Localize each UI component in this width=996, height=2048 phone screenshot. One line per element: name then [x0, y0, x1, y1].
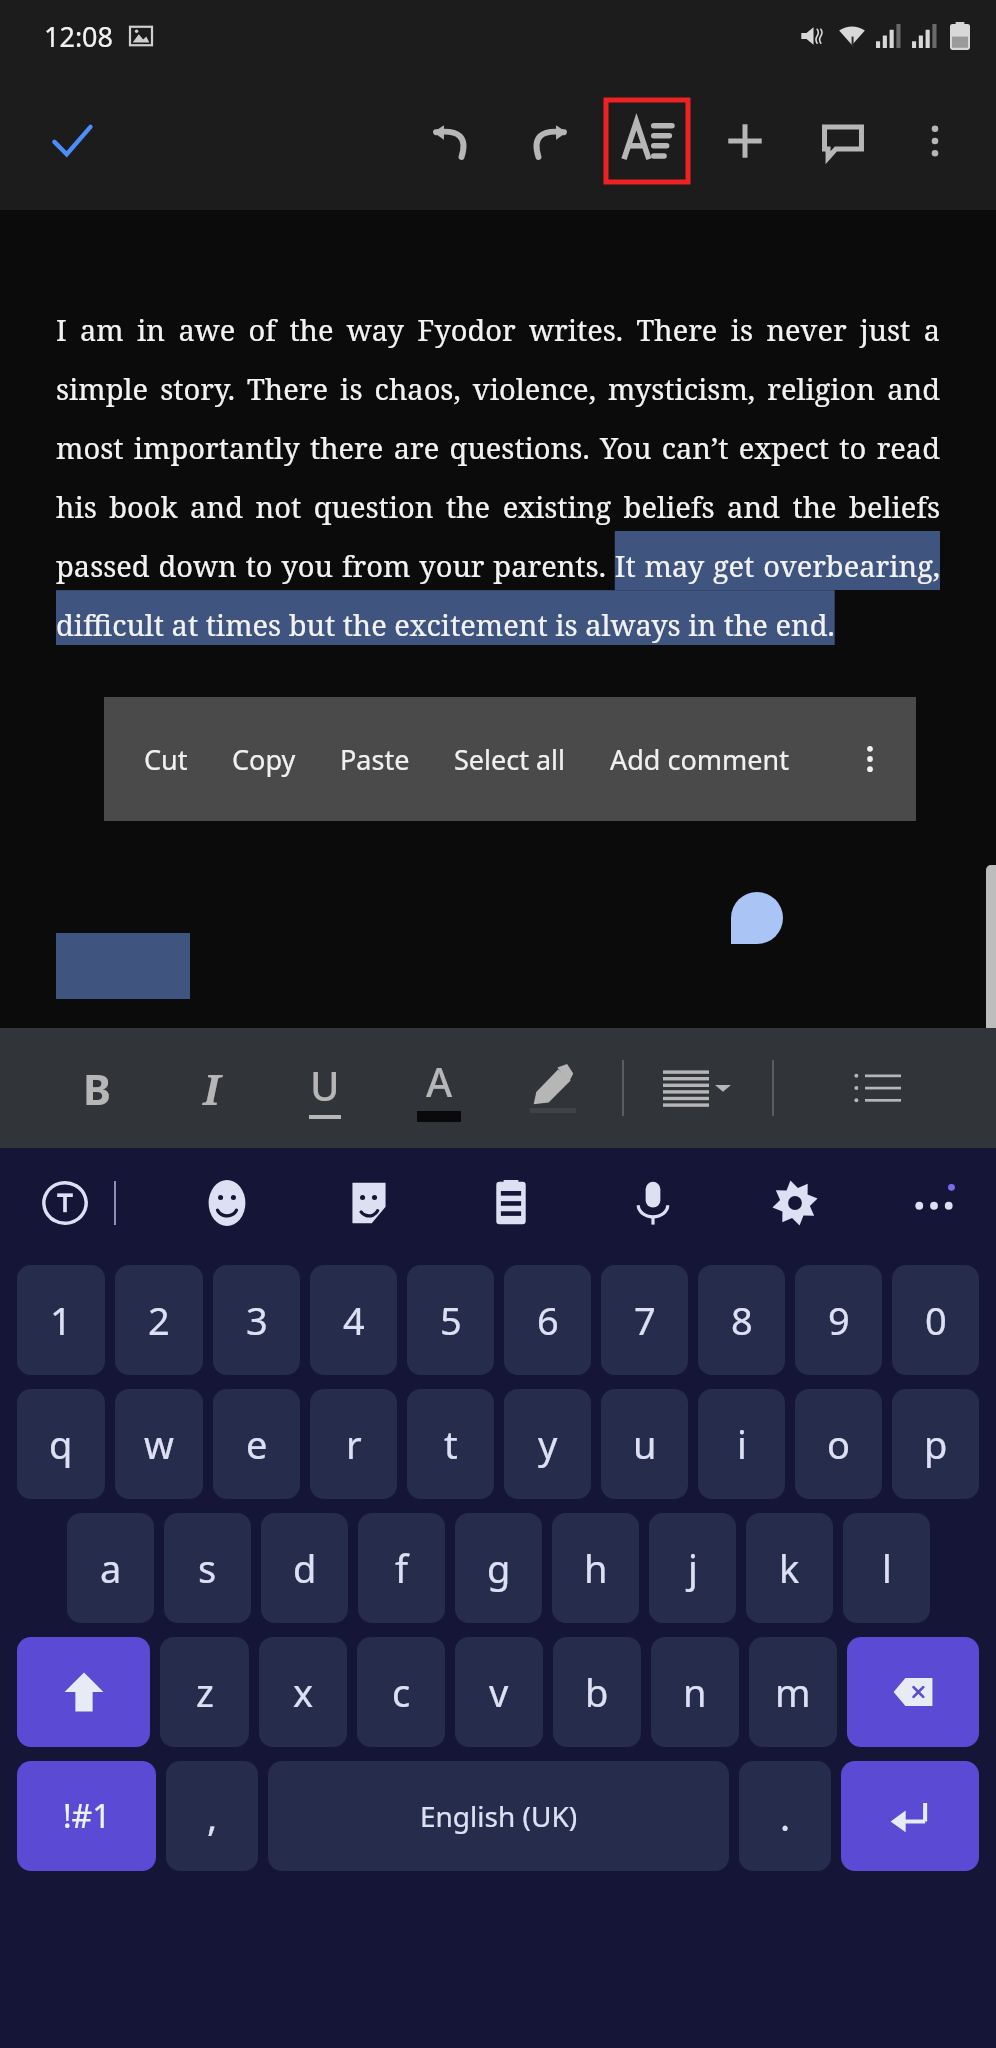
- button[interactable]: 6: [504, 1265, 591, 1375]
- staticText: A: [426, 1054, 453, 1108]
- button[interactable]: 8: [698, 1265, 785, 1375]
- button[interactable]: b: [553, 1637, 641, 1747]
- button[interactable]: y: [504, 1389, 591, 1499]
- button[interactable]: Backspace: [847, 1637, 979, 1747]
- button[interactable]: Text formatting: [604, 98, 690, 184]
- button[interactable]: 4: [310, 1265, 397, 1375]
- staticText: ,: [207, 1790, 218, 1842]
- button[interactable]: !#1: [17, 1761, 156, 1871]
- button[interactable]: 0: [892, 1265, 979, 1375]
- staticText: 2: [148, 1294, 170, 1346]
- button[interactable]: Translate: [34, 1172, 96, 1234]
- button[interactable]: Settings: [764, 1172, 826, 1234]
- button[interactable]: Shift: [17, 1637, 150, 1747]
- button[interactable]: Bulleted list: [842, 1038, 912, 1138]
- button[interactable]: c: [357, 1637, 445, 1747]
- staticText: 0: [925, 1294, 947, 1346]
- button[interactable]: m: [749, 1637, 837, 1747]
- staticText: 8: [731, 1294, 753, 1346]
- button[interactable]: Comments: [808, 106, 878, 176]
- button[interactable]: Undo: [416, 106, 486, 176]
- button[interactable]: Redo: [514, 106, 584, 176]
- staticText: p: [924, 1418, 948, 1470]
- staticText: I: [203, 1060, 220, 1117]
- button[interactable]: Select all: [432, 697, 588, 821]
- button[interactable]: Emoji: [196, 1172, 258, 1234]
- button[interactable]: k: [746, 1513, 833, 1623]
- button[interactable]: 1: [17, 1265, 105, 1375]
- button[interactable]: r: [310, 1389, 397, 1499]
- button[interactable]: Text colour: [404, 1038, 474, 1138]
- staticText: m: [775, 1666, 811, 1718]
- staticText: U: [310, 1058, 340, 1112]
- button[interactable]: z: [160, 1637, 249, 1747]
- button[interactable]: More actions: [842, 697, 898, 821]
- button[interactable]: Underline: [290, 1038, 360, 1138]
- staticText: 9: [828, 1294, 850, 1346]
- button[interactable]: q: [17, 1389, 105, 1499]
- staticText: u: [633, 1418, 657, 1470]
- button[interactable]: ,: [166, 1761, 258, 1871]
- button[interactable]: Copy: [210, 697, 318, 821]
- button[interactable]: English (UK): [268, 1761, 729, 1871]
- staticText: x: [293, 1666, 314, 1718]
- staticText: z: [196, 1666, 214, 1718]
- staticText: i: [737, 1418, 747, 1470]
- staticText: t: [444, 1418, 458, 1470]
- button[interactable]: a: [67, 1513, 154, 1623]
- staticText: s: [198, 1542, 217, 1594]
- staticText: Copy: [232, 741, 296, 778]
- staticText: w: [144, 1418, 174, 1470]
- staticText: 5: [440, 1294, 462, 1346]
- button[interactable]: o: [795, 1389, 882, 1499]
- button[interactable]: v: [455, 1637, 543, 1747]
- button[interactable]: Clipboard: [480, 1172, 542, 1234]
- button[interactable]: j: [649, 1513, 736, 1623]
- button[interactable]: 3: [213, 1265, 300, 1375]
- button[interactable]: i: [698, 1389, 785, 1499]
- button[interactable]: More options: [900, 106, 970, 176]
- staticText: 7: [634, 1294, 656, 1346]
- button[interactable]: Enter: [841, 1761, 979, 1871]
- button[interactable]: Paste: [318, 697, 432, 821]
- staticText: h: [584, 1542, 608, 1594]
- button[interactable]: Highlight: [518, 1038, 588, 1138]
- button[interactable]: 2: [115, 1265, 203, 1375]
- button[interactable]: h: [552, 1513, 639, 1623]
- button[interactable]: d: [261, 1513, 348, 1623]
- staticText: k: [779, 1542, 800, 1594]
- button[interactable]: g: [455, 1513, 542, 1623]
- staticText: 4: [343, 1294, 365, 1346]
- button[interactable]: 5: [407, 1265, 494, 1375]
- button[interactable]: More: [906, 1175, 962, 1231]
- staticText: d: [293, 1542, 317, 1594]
- button[interactable]: w: [115, 1389, 203, 1499]
- staticText: e: [246, 1418, 268, 1470]
- button[interactable]: Voice input: [622, 1172, 684, 1234]
- button[interactable]: 9: [795, 1265, 882, 1375]
- button[interactable]: x: [259, 1637, 347, 1747]
- staticText: y: [538, 1418, 558, 1470]
- button[interactable]: 7: [601, 1265, 688, 1375]
- button[interactable]: Add comment: [588, 697, 811, 821]
- button[interactable]: Cut: [122, 697, 210, 821]
- button[interactable]: Italic: [176, 1038, 246, 1138]
- button[interactable]: u: [601, 1389, 688, 1499]
- button[interactable]: n: [651, 1637, 739, 1747]
- button[interactable]: e: [213, 1389, 300, 1499]
- button[interactable]: t: [407, 1389, 494, 1499]
- button[interactable]: Insert: [710, 106, 780, 176]
- button[interactable]: p: [892, 1389, 979, 1499]
- staticText: 1: [50, 1294, 72, 1346]
- staticText: a: [100, 1542, 122, 1594]
- button[interactable]: s: [164, 1513, 251, 1623]
- button[interactable]: f: [358, 1513, 445, 1623]
- staticText: j: [688, 1542, 698, 1594]
- button[interactable]: .: [739, 1761, 831, 1871]
- button[interactable]: Done: [32, 101, 112, 181]
- button[interactable]: l: [843, 1513, 930, 1623]
- button[interactable]: Stickers: [338, 1172, 400, 1234]
- button[interactable]: Alignment: [662, 1038, 732, 1138]
- staticText: o: [827, 1418, 850, 1470]
- button[interactable]: Bold: [62, 1038, 132, 1138]
